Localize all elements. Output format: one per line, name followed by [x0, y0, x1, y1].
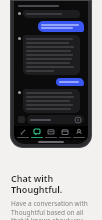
button[interactable]: Send	[75, 117, 81, 123]
button[interactable]: Send	[27, 115, 84, 124]
button[interactable]: Profile	[72, 127, 86, 139]
button[interactable]: Calendar	[58, 127, 72, 139]
staticText: Have a conversation with Thoughtful base…	[11, 199, 94, 220]
button[interactable]: Journal	[16, 127, 30, 139]
button[interactable]: Chat	[30, 127, 44, 139]
staticText: Chat with Thoughtful.	[11, 172, 94, 195]
button[interactable]: Attach	[18, 116, 25, 123]
button[interactable]: Insights	[44, 127, 58, 139]
